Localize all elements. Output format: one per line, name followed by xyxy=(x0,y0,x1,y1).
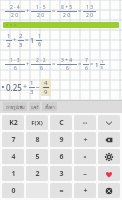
staticText: + xyxy=(26,60,30,68)
staticText: 7 xyxy=(85,57,88,64)
staticText: 4 xyxy=(44,79,48,87)
staticText: = xyxy=(90,60,94,68)
staticText: + xyxy=(26,7,30,15)
staticText: 8 + 5 xyxy=(61,4,73,11)
button[interactable]: 6 xyxy=(50,149,72,164)
staticText: 2 0 xyxy=(86,12,94,19)
staticText: = xyxy=(52,7,56,15)
staticText: + xyxy=(13,36,17,44)
staticText: 3 xyxy=(19,41,23,49)
staticText: 6 xyxy=(59,152,64,162)
staticText: 1 xyxy=(7,32,11,40)
staticText: 1 xyxy=(11,169,16,179)
button[interactable]: × xyxy=(74,149,96,164)
staticText: 3 xyxy=(59,169,64,179)
staticText: 9 xyxy=(59,135,64,145)
staticText: 6 xyxy=(85,65,88,72)
staticText: 0.25 xyxy=(6,82,22,93)
button[interactable]: Backspace xyxy=(98,132,120,147)
staticText: 2 0 xyxy=(63,12,71,19)
button[interactable]: Collapse keyboard xyxy=(98,115,120,130)
staticText: ÷ xyxy=(83,135,88,145)
button[interactable]: ÷ xyxy=(74,132,96,147)
button[interactable]: 0 xyxy=(2,183,24,198)
staticText: F(X) xyxy=(31,119,43,127)
staticText: 1 3 xyxy=(86,4,94,11)
staticText: 1 · 5 xyxy=(36,4,46,11)
staticText: + xyxy=(23,82,28,92)
staticText: 2 xyxy=(35,169,40,179)
staticText: 2 0 xyxy=(11,12,19,19)
button[interactable]: Settings xyxy=(98,149,120,164)
staticText: 1 xyxy=(30,79,34,87)
staticText: 2 · 2 xyxy=(36,57,46,64)
staticText: 6 xyxy=(38,41,41,48)
staticText: 3 xyxy=(30,88,34,96)
staticText: – xyxy=(36,82,40,92)
button[interactable]: 3 xyxy=(50,166,72,181)
staticText: 6 xyxy=(66,65,69,72)
staticText: 4 xyxy=(11,152,16,162)
staticText: แชร์ xyxy=(31,104,39,110)
button[interactable]: + xyxy=(74,183,96,198)
staticText: 6 xyxy=(14,65,17,72)
staticText: + xyxy=(83,186,88,196)
staticText: 1 xyxy=(30,36,35,46)
staticText: 9 xyxy=(44,88,48,96)
button[interactable]: Favorite xyxy=(98,166,120,181)
staticText: ถ่ายรูปเพิ่ม xyxy=(6,104,25,110)
staticText: = xyxy=(52,60,56,68)
button[interactable]: K2 xyxy=(2,115,24,130)
staticText: 1 · 3 xyxy=(10,57,20,64)
button[interactable]: 7 xyxy=(2,132,24,147)
staticText: 8 xyxy=(35,135,40,145)
button[interactable]: 5 xyxy=(26,149,48,164)
staticText: ตั้งค่า xyxy=(45,104,55,110)
staticText: 1 xyxy=(95,61,99,69)
staticText: 2 xyxy=(19,32,23,40)
staticText: – xyxy=(83,169,87,179)
button[interactable] xyxy=(3,22,119,28)
button[interactable]: 8 xyxy=(26,132,48,147)
button[interactable]: ถ่ายรูปเพิ่ม xyxy=(3,102,27,111)
button[interactable]: More xyxy=(74,115,96,130)
staticText: 7 xyxy=(11,135,16,145)
button[interactable]: F(X) xyxy=(26,115,48,130)
staticText: 1 xyxy=(101,59,104,64)
staticText: = xyxy=(78,60,82,68)
staticText: K2 xyxy=(9,118,18,128)
button[interactable]: แชร์ xyxy=(29,102,40,111)
staticText: × xyxy=(83,153,87,161)
staticText: = xyxy=(25,36,29,44)
staticText: 5 xyxy=(35,152,40,162)
staticText: 3 + 4 xyxy=(61,57,73,64)
button[interactable]: 1 xyxy=(2,166,24,181)
staticText: = xyxy=(78,7,82,15)
staticText: 2 xyxy=(7,41,11,49)
staticText: 1 xyxy=(38,33,41,40)
staticText: 2 0 xyxy=(37,12,45,19)
staticText: 0 xyxy=(11,186,16,196)
button[interactable]: ตั้งค่า xyxy=(42,102,57,111)
button[interactable]: C xyxy=(50,115,72,130)
button[interactable]: = xyxy=(50,183,72,198)
staticText: C xyxy=(59,118,64,128)
button[interactable]: – xyxy=(74,166,96,181)
button[interactable]: 4 xyxy=(43,79,49,96)
staticText: 6 xyxy=(40,65,43,72)
button[interactable]: 9 xyxy=(50,132,72,147)
button[interactable]: Clear all xyxy=(98,183,120,198)
staticText: = xyxy=(59,186,64,196)
button[interactable]: 4 xyxy=(2,149,24,164)
staticText: 2 · 4 xyxy=(10,4,20,11)
button[interactable]: 2 xyxy=(26,166,48,181)
staticText: 6 xyxy=(101,65,104,70)
